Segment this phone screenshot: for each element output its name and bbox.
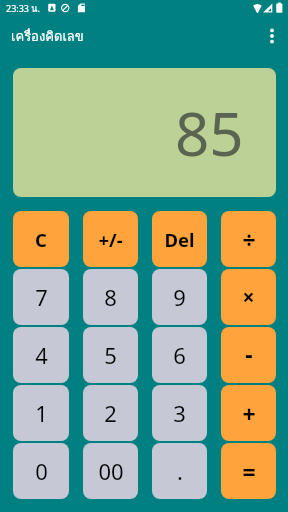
staticText: 7 (35, 282, 48, 312)
button[interactable]: 9 (152, 269, 207, 325)
staticText: 23:33 น. (6, 2, 40, 16)
staticText: เครื่องคิดเลข (11, 26, 84, 47)
staticText: × (242, 283, 255, 312)
staticText: 8 (104, 282, 117, 312)
staticText: 4 (35, 340, 48, 370)
staticText: 0 (35, 456, 48, 486)
button[interactable]: C (13, 211, 69, 267)
staticText: 2 (104, 398, 117, 428)
button[interactable]: 3 (152, 385, 207, 441)
button[interactable]: 00 (83, 443, 138, 499)
button[interactable]: 8 (83, 269, 138, 325)
button[interactable]: = (221, 443, 276, 499)
button[interactable]: 1 (13, 385, 69, 441)
button[interactable]: . (152, 443, 207, 499)
staticText: 00 (98, 456, 124, 486)
staticText: Del (164, 227, 195, 252)
staticText: ÷ (242, 224, 256, 255)
staticText: - (245, 338, 253, 369)
button[interactable]: 6 (152, 327, 207, 383)
staticText: 5 (104, 340, 117, 370)
button[interactable]: 7 (13, 269, 69, 325)
staticText: 9 (173, 282, 186, 312)
button[interactable]: 5 (83, 327, 138, 383)
button[interactable]: More options (256, 17, 288, 55)
staticText: = (242, 456, 256, 487)
button[interactable]: Del (152, 211, 207, 267)
button[interactable]: 4 (13, 327, 69, 383)
staticText: 85 (175, 92, 244, 174)
staticText: . (177, 456, 183, 486)
staticText: + (242, 398, 256, 429)
button[interactable]: 2 (83, 385, 138, 441)
staticText: C (35, 227, 47, 252)
staticText: +/- (98, 227, 123, 252)
staticText: 6 (173, 340, 186, 370)
staticText: 1 (35, 398, 48, 428)
button[interactable]: - (221, 327, 276, 383)
button[interactable]: × (221, 269, 276, 325)
button[interactable]: 0 (13, 443, 69, 499)
staticText: 3 (173, 398, 186, 428)
button[interactable]: ÷ (221, 211, 276, 267)
button[interactable]: +/- (83, 211, 138, 267)
button[interactable]: + (221, 385, 276, 441)
